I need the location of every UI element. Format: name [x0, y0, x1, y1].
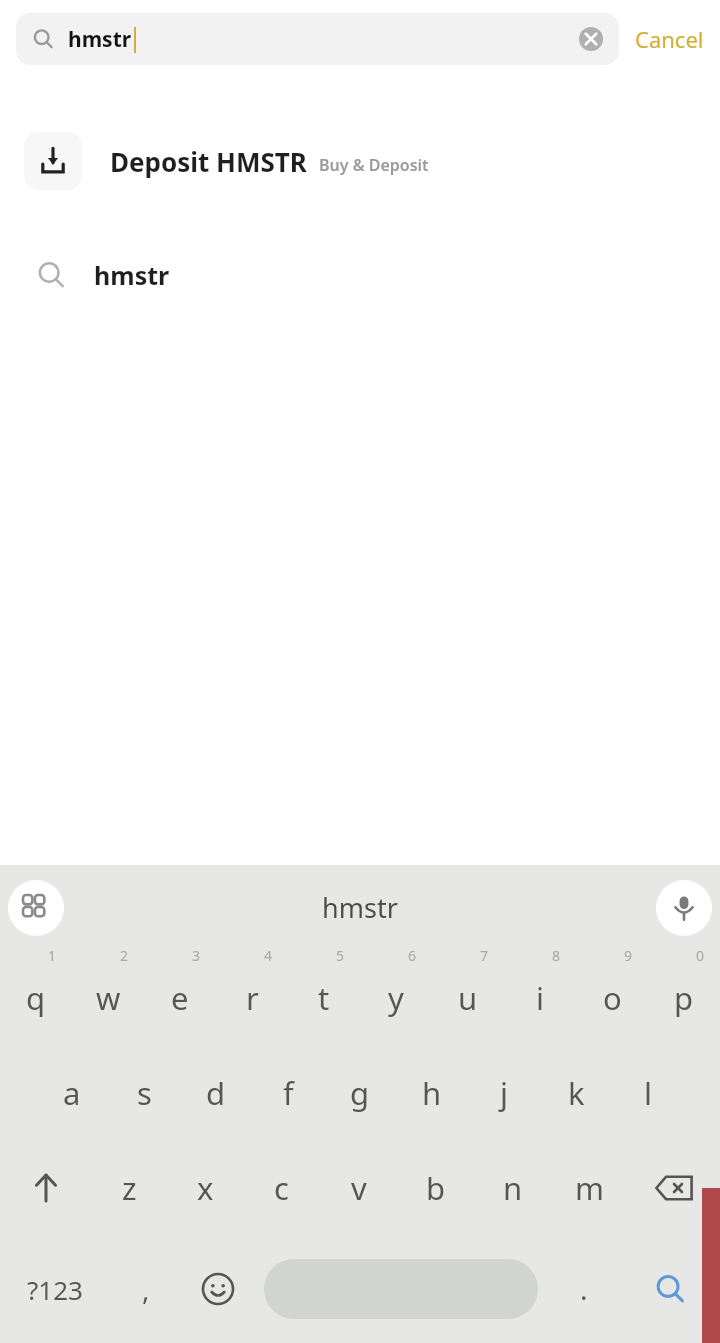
button[interactable]: r	[216, 950, 288, 1045]
button[interactable]: .	[548, 1235, 620, 1343]
button[interactable]: Backspace	[628, 1140, 720, 1235]
staticText: b	[426, 1167, 446, 1209]
button[interactable]: Deposit HMSTR	[0, 118, 720, 204]
button[interactable]: b	[397, 1140, 474, 1235]
button[interactable]: v	[320, 1140, 397, 1235]
button[interactable]: d	[180, 1045, 252, 1140]
button[interactable]: Emoji	[182, 1235, 254, 1343]
staticText: l	[644, 1072, 652, 1114]
staticText: ,	[142, 1270, 150, 1308]
staticText: a	[63, 1072, 81, 1114]
staticText: v	[351, 1167, 367, 1209]
button[interactable]: f	[252, 1045, 324, 1140]
button[interactable]: n	[474, 1140, 551, 1235]
button[interactable]: u	[432, 950, 504, 1045]
staticText: 7	[480, 946, 489, 965]
button[interactable]: w	[72, 950, 144, 1045]
staticText: .	[580, 1270, 588, 1308]
staticText: w	[96, 977, 121, 1019]
staticText: 0	[696, 946, 705, 965]
staticText: c	[274, 1167, 289, 1209]
button[interactable]: e	[144, 950, 216, 1045]
button[interactable]: hmstr	[0, 232, 720, 318]
staticText: 5	[336, 946, 345, 965]
staticText: 1	[48, 946, 57, 965]
button[interactable]: ?123	[0, 1235, 110, 1343]
staticText: hmstr	[322, 889, 398, 926]
staticText: 3	[192, 946, 201, 965]
button[interactable]: ,	[110, 1235, 182, 1343]
staticText: r	[246, 977, 259, 1019]
button[interactable]: a	[36, 1045, 108, 1140]
button[interactable]: Search	[620, 1235, 720, 1343]
button[interactable]: o	[576, 950, 648, 1045]
button[interactable]: z	[91, 1140, 167, 1235]
button[interactable]: h	[396, 1045, 468, 1140]
button[interactable]: Keyboard options	[8, 880, 64, 936]
button[interactable]: Shift	[0, 1140, 91, 1235]
staticText: y	[388, 977, 404, 1019]
staticText: t	[318, 977, 330, 1019]
staticText: 8	[552, 946, 561, 965]
staticText: ?123	[27, 1272, 83, 1307]
staticText: o	[603, 977, 622, 1019]
button[interactable]: t	[288, 950, 360, 1045]
staticText: Buy & Deposit	[319, 154, 429, 176]
button[interactable]: g	[324, 1045, 396, 1140]
button[interactable]: j	[468, 1045, 540, 1140]
staticText: q	[26, 977, 46, 1019]
staticText: d	[206, 1072, 226, 1114]
staticText: hmstr	[94, 258, 170, 292]
button[interactable]: l	[612, 1045, 684, 1140]
staticText: j	[500, 1072, 508, 1114]
staticText: h	[422, 1072, 442, 1114]
staticText: 2	[120, 946, 129, 965]
staticText: f	[283, 1072, 294, 1114]
staticText: Cancel	[635, 24, 704, 54]
button[interactable]: m	[551, 1140, 628, 1235]
button[interactable]: Voice input	[656, 880, 712, 936]
button[interactable]: k	[540, 1045, 612, 1140]
button[interactable]: Cancel	[619, 0, 720, 78]
staticText: p	[674, 977, 694, 1019]
staticText: 9	[624, 946, 633, 965]
button[interactable]: s	[108, 1045, 180, 1140]
staticText: hmstr	[68, 25, 132, 54]
button[interactable]: i	[504, 950, 576, 1045]
staticText: z	[122, 1167, 137, 1209]
staticText: n	[503, 1167, 523, 1209]
staticText: i	[536, 977, 544, 1019]
button[interactable]: q	[0, 950, 72, 1045]
staticText: x	[197, 1167, 214, 1209]
button[interactable]: c	[243, 1140, 320, 1235]
staticText: u	[458, 977, 478, 1019]
staticText: 6	[408, 946, 417, 965]
staticText: k	[568, 1072, 585, 1114]
button[interactable]: Space	[264, 1259, 538, 1319]
staticText: s	[137, 1072, 152, 1114]
staticText: Deposit HMSTR	[110, 144, 307, 179]
staticText: 4	[264, 946, 273, 965]
button[interactable]: x	[167, 1140, 243, 1235]
button[interactable]: p	[648, 950, 720, 1045]
staticText: g	[350, 1072, 370, 1114]
staticText: m	[575, 1167, 604, 1209]
button[interactable]: Clear text	[571, 19, 611, 59]
button[interactable]: y	[360, 950, 432, 1045]
button[interactable]: hmstr	[16, 13, 619, 65]
staticText: e	[171, 977, 189, 1019]
